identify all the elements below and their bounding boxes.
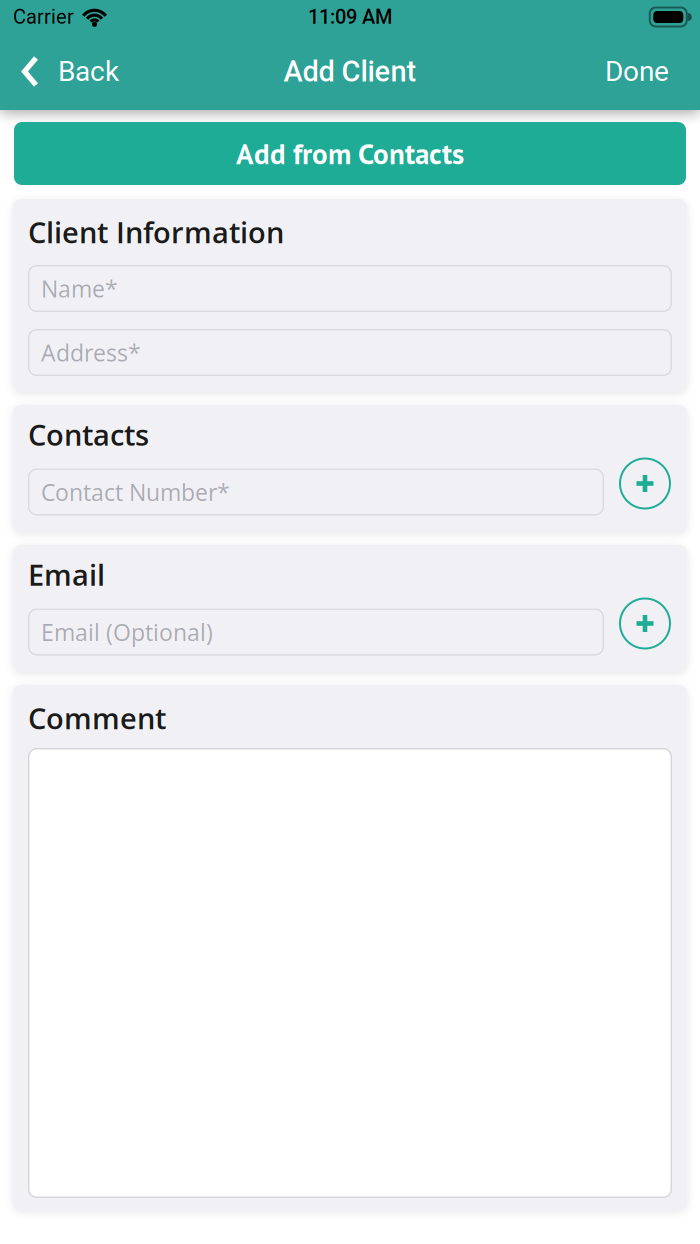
staticText: Email (Optional)	[41, 616, 213, 648]
staticText: Carrier	[13, 5, 74, 29]
button[interactable]: Done	[605, 55, 669, 88]
button[interactable]: Name*	[28, 265, 672, 312]
staticText: Contact Number*	[41, 476, 230, 508]
staticText: Add Client	[283, 54, 416, 88]
button[interactable]: Add contact number	[620, 458, 670, 508]
staticText: Email	[28, 555, 105, 594]
staticText: Done	[605, 55, 669, 88]
staticText: 11:09 AM	[308, 5, 392, 29]
button[interactable]: Comment	[28, 748, 672, 1198]
staticText: Add from Contacts	[236, 135, 464, 172]
button[interactable]: Add email	[620, 598, 670, 648]
button[interactable]: Back	[21, 55, 119, 88]
staticText: Back	[58, 55, 119, 88]
staticText: Client Information	[28, 212, 284, 252]
button[interactable]: Contact Number*	[28, 468, 604, 515]
staticText: Address*	[41, 337, 141, 368]
staticText: Name*	[41, 273, 118, 304]
staticText: Contacts	[28, 415, 149, 454]
button[interactable]: Add from Contacts	[14, 122, 686, 185]
button[interactable]: Address*	[28, 329, 672, 376]
button[interactable]: Email (Optional)	[28, 608, 604, 655]
staticText: Comment	[28, 698, 166, 738]
